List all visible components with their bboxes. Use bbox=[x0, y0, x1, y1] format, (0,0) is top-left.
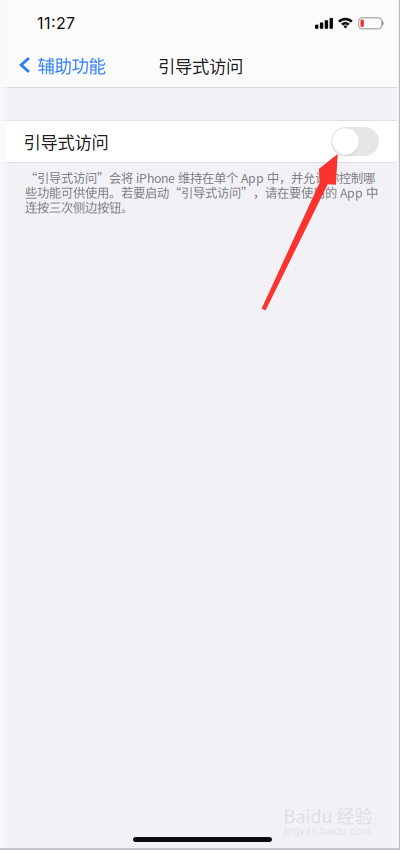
staticText: 辅助功能 bbox=[37, 52, 105, 78]
staticText: jingyan.baidu.com bbox=[283, 825, 370, 837]
button[interactable]: 引导式访问 bbox=[331, 127, 379, 156]
staticText: 引导式访问 bbox=[23, 129, 108, 154]
staticText: Baidu 经验 bbox=[283, 802, 372, 829]
staticText: “引导式访问”会将 iPhone 维持在单个 App 中，并允许你控制哪些功能可… bbox=[25, 169, 378, 216]
staticText: 引导式访问 bbox=[158, 53, 243, 78]
staticText: 11:27 bbox=[37, 14, 75, 33]
button[interactable]: 辅助功能 bbox=[1, 43, 118, 87]
